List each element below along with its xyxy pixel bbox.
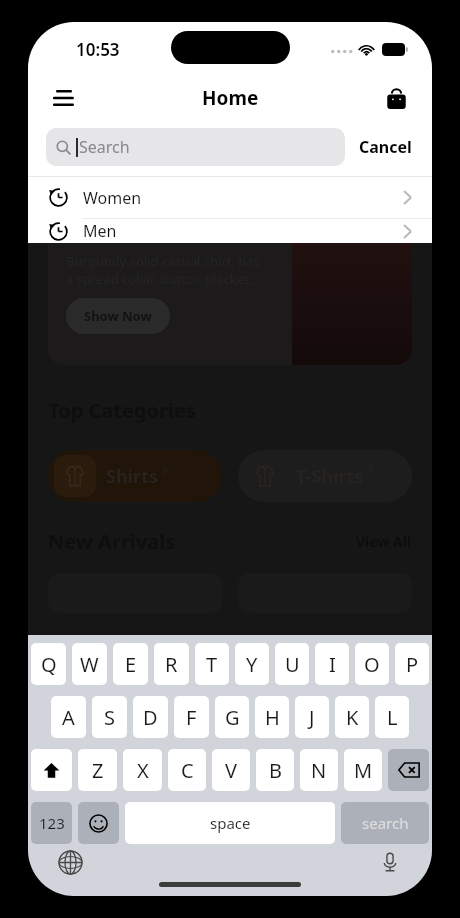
staticText: H: [265, 704, 280, 731]
button[interactable]: K: [335, 696, 369, 738]
staticText: A: [62, 704, 75, 731]
button[interactable]: W: [72, 643, 107, 685]
staticText: U: [285, 651, 300, 678]
button[interactable]: Women: [28, 177, 432, 219]
button[interactable]: Shirts: [48, 450, 222, 502]
staticText: K: [346, 704, 359, 731]
staticText: View All: [356, 532, 412, 551]
button[interactable]: 123: [31, 802, 72, 844]
staticText: search: [362, 813, 409, 833]
button[interactable]: S: [92, 696, 127, 738]
staticText: N: [311, 757, 327, 784]
button[interactable]: Dictation: [374, 846, 406, 878]
button[interactable]: I: [315, 643, 349, 685]
staticText: space: [210, 813, 251, 833]
staticText: Show Now: [84, 307, 152, 325]
button[interactable]: V: [212, 749, 250, 791]
button[interactable]: Change keyboard: [54, 846, 86, 878]
button[interactable]: Show Now: [66, 298, 170, 334]
button[interactable]: O: [355, 643, 389, 685]
staticText: F: [186, 704, 197, 731]
button[interactable]: G: [215, 696, 249, 738]
staticText: Shirts: [106, 464, 158, 489]
staticText: T: [206, 651, 218, 678]
staticText: Search: [79, 136, 130, 158]
staticText: I: [329, 651, 336, 678]
button[interactable]: R: [154, 643, 189, 685]
button[interactable]: T: [195, 643, 229, 685]
staticText: Z: [92, 757, 104, 784]
button[interactable]: Emoji: [78, 802, 119, 844]
button[interactable]: U: [275, 643, 309, 685]
button[interactable]: Z: [78, 749, 117, 791]
staticText: G: [225, 704, 240, 731]
staticText: Home: [202, 85, 259, 111]
button[interactable]: N: [300, 749, 338, 791]
button[interactable]: Cart: [374, 76, 418, 120]
staticText: S: [104, 704, 115, 731]
staticText: Y: [246, 651, 258, 678]
staticText: 9: [162, 463, 168, 477]
button[interactable]: H: [255, 696, 289, 738]
button[interactable]: X: [123, 749, 162, 791]
staticText: Women: [83, 187, 142, 209]
button[interactable]: Backspace: [388, 749, 429, 791]
button[interactable]: space: [125, 802, 335, 844]
staticText: P: [406, 651, 419, 678]
button[interactable]: E: [113, 643, 148, 685]
button[interactable]: Men: [28, 219, 432, 243]
button[interactable]: C: [168, 749, 206, 791]
button[interactable]: Q: [31, 643, 66, 685]
button[interactable]: Solid Pure cotton casual...: [48, 218, 412, 365]
staticText: J: [309, 704, 315, 731]
button[interactable]: M: [344, 749, 382, 791]
staticText: L: [387, 704, 398, 731]
staticText: Men: [83, 220, 117, 242]
button[interactable]: D: [133, 696, 168, 738]
staticText: R: [165, 651, 178, 678]
button[interactable]: Search: [46, 128, 345, 166]
staticText: Top Categories: [48, 397, 196, 424]
button[interactable]: search: [341, 802, 429, 844]
staticText: 123: [39, 813, 65, 833]
button[interactable]: J: [295, 696, 329, 738]
button[interactable]: F: [174, 696, 209, 738]
staticText: Solid Pure cotton casual...: [66, 224, 271, 246]
staticText: D: [143, 704, 158, 731]
button[interactable]: Shift: [31, 749, 72, 791]
button[interactable]: A: [51, 696, 86, 738]
button[interactable]: L: [375, 696, 409, 738]
staticText: V: [225, 757, 237, 784]
staticText: T-Shirts: [296, 464, 364, 489]
button[interactable]: Y: [235, 643, 269, 685]
staticText: E: [125, 651, 137, 678]
staticText: M: [354, 757, 373, 784]
button[interactable]: Menu: [42, 76, 86, 120]
button[interactable]: Cancel: [357, 130, 414, 164]
staticText: 10:53: [76, 38, 120, 61]
staticText: Q: [41, 651, 57, 678]
button[interactable]: P: [395, 643, 429, 685]
button[interactable]: B: [256, 749, 294, 791]
staticText: B: [269, 757, 282, 784]
staticText: W: [80, 651, 99, 678]
staticText: O: [364, 651, 380, 678]
staticText: X: [137, 757, 149, 784]
button[interactable]: View All: [356, 532, 412, 551]
staticText: Cancel: [359, 136, 412, 158]
staticText: C: [181, 757, 194, 784]
